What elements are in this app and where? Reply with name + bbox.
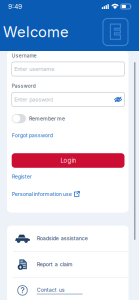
- staticText: Enter username: [14, 66, 54, 72]
- button[interactable]: Remember me: [12, 114, 124, 123]
- button[interactable]: Roadside assistance: [7, 226, 128, 251]
- staticText: Personal information use: [12, 191, 72, 197]
- staticText: Contact us: [37, 286, 65, 293]
- staticText: Remember me: [29, 115, 65, 122]
- staticText: Enter password: [14, 96, 53, 103]
- button[interactable]: ?: [7, 278, 128, 300]
- staticText: Login: [61, 157, 76, 164]
- staticText: Username: [12, 53, 37, 58]
- button[interactable]: Register: [12, 174, 32, 179]
- staticText: 9:49: [8, 2, 22, 11]
- button[interactable]: Forgot password: [12, 133, 53, 138]
- staticText: Roadside assistance: [37, 235, 88, 242]
- staticText: Welcome: [3, 23, 69, 41]
- staticText: Register: [12, 174, 32, 180]
- button[interactable]: Report a claim: [7, 252, 128, 277]
- staticText: Report a claim: [37, 261, 73, 268]
- button[interactable]: Personal information use: [12, 191, 80, 197]
- staticText: Password: [12, 83, 36, 89]
- staticText: ?: [20, 286, 24, 295]
- button[interactable]: Login: [12, 153, 124, 168]
- staticText: Forgot password: [12, 132, 53, 138]
